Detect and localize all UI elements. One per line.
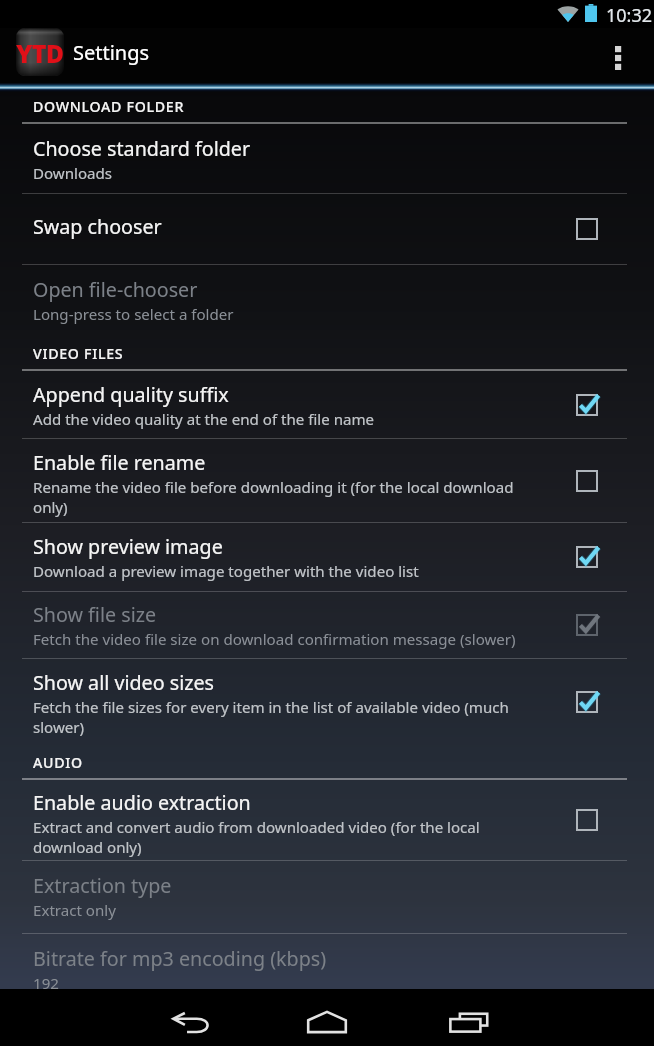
button[interactable]: Extraction type	[0, 861, 654, 933]
staticText: 192	[33, 973, 524, 993]
staticText: YTD	[16, 36, 64, 70]
staticText: Choose standard folder	[33, 138, 524, 161]
staticText: Fetch the video file size on download co…	[33, 629, 524, 649]
button[interactable]: Home	[292, 1001, 362, 1043]
staticText: Bitrate for mp3 encoding (kbps)	[33, 948, 524, 971]
staticText: Long-press to select a folder	[33, 304, 524, 324]
staticText: DOWNLOAD FOLDER	[33, 97, 185, 116]
staticText: Show all video sizes	[33, 672, 524, 695]
staticText: Settings	[73, 39, 150, 66]
staticText: 10:32	[606, 3, 653, 28]
button[interactable]: Show preview image	[0, 523, 654, 591]
button[interactable]: Show file size	[0, 592, 654, 658]
staticText: Enable file rename	[33, 452, 524, 475]
button[interactable]: Enable audio extraction	[0, 780, 654, 860]
staticText: Swap chooser	[33, 216, 524, 239]
staticText: Extraction type	[33, 875, 524, 898]
button[interactable]: Recent apps	[431, 1003, 507, 1041]
staticText: Append quality suffix	[33, 384, 524, 407]
button[interactable]: Append quality suffix	[0, 371, 654, 438]
staticText: Show file size	[33, 604, 524, 627]
staticText: Add the video quality at the end of the …	[33, 409, 524, 429]
staticText: Enable audio extraction	[33, 792, 524, 815]
button[interactable]: Back	[160, 1004, 222, 1040]
button[interactable]: Open file-chooser	[0, 265, 654, 336]
button[interactable]: Choose standard folder	[0, 124, 654, 193]
button[interactable]: Show all video sizes	[0, 659, 654, 745]
staticText: Show preview image	[33, 536, 524, 559]
button[interactable]: Swap chooser	[0, 194, 654, 264]
staticText: Rename the video file before downloading…	[33, 477, 524, 517]
staticText: Open file-chooser	[33, 279, 524, 302]
staticText: Fetch the file sizes for every item in t…	[33, 697, 524, 737]
staticText: Downloads	[33, 163, 524, 183]
button[interactable]: More options	[595, 28, 643, 83]
staticText: Extract and convert audio from downloade…	[33, 817, 524, 857]
staticText: Extract only	[33, 900, 524, 920]
button[interactable]: Enable file rename	[0, 439, 654, 522]
button[interactable]: Bitrate for mp3 encoding (kbps)	[0, 934, 654, 1004]
staticText: VIDEO FILES	[33, 344, 124, 363]
staticText: AUDIO	[33, 753, 83, 772]
button[interactable]: Wi-Fi signal	[549, 1, 587, 27]
staticText: Download a preview image together with t…	[33, 561, 524, 581]
